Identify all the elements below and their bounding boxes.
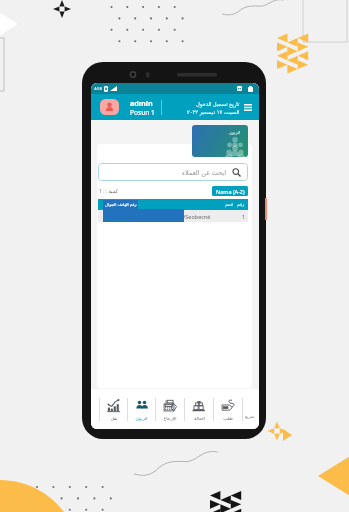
staticText: السبت، ١٧ ديسمبر ٢٠٢٢ [187, 108, 240, 115]
staticText: طلب [223, 416, 233, 421]
button[interactable]: Nama (A-Z) [212, 186, 248, 196]
button[interactable]: ايحث عن العملاء [105, 163, 241, 181]
staticText: الزبون [229, 130, 241, 135]
staticText: الزبون [135, 416, 148, 421]
staticText: تاريخ تسجيل الدخول [196, 100, 240, 107]
button[interactable]: الزبون [128, 389, 155, 429]
staticText: Posun 1 [130, 108, 155, 117]
staticText: admin [130, 98, 153, 108]
other: Search [232, 168, 241, 177]
button[interactable]: الزبون [192, 125, 248, 157]
staticText: رقم الهاتف الجوال [105, 202, 137, 208]
staticText: كمية : : 1 [99, 188, 118, 195]
button[interactable]: More [243, 389, 259, 429]
staticText: نقل [110, 416, 118, 421]
staticText: VSeobecné [182, 213, 211, 220]
staticText: ايحث عن العملاء [182, 168, 227, 177]
button[interactable]: Profile [100, 99, 119, 115]
button[interactable]: VSeobecné [98, 210, 248, 222]
button[interactable]: الإرجاع [156, 389, 184, 429]
staticText: سريع [245, 414, 255, 419]
button[interactable]: نقل [100, 389, 127, 429]
staticText: الإرجاع [163, 416, 177, 421]
staticText: اسم [225, 202, 233, 207]
button[interactable]: Menu [243, 99, 252, 115]
staticText: Nama (A-Z) [216, 188, 245, 195]
staticText: رقم [237, 202, 245, 207]
staticText: الحالة [194, 416, 205, 421]
staticText: 4:58 [94, 86, 102, 91]
button[interactable]: طلب [214, 389, 242, 429]
staticText: 1 [242, 213, 246, 220]
button[interactable]: الحالة [185, 389, 213, 429]
